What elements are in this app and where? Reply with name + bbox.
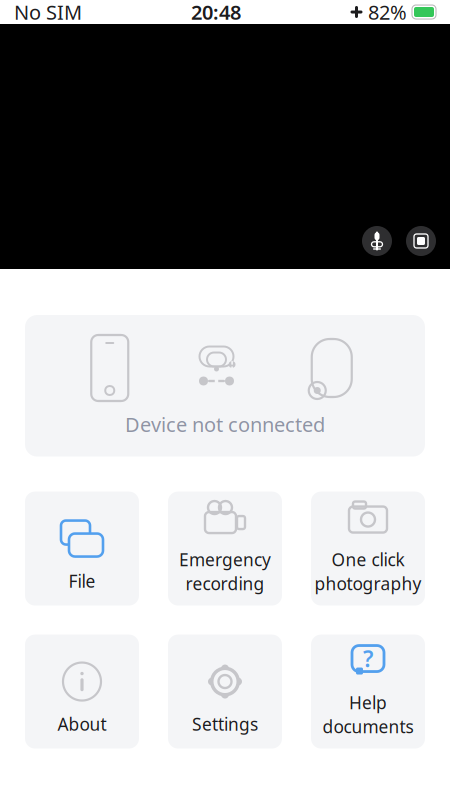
staticText: documents [322,715,413,738]
staticText: Help [349,691,387,714]
button[interactable]: Full screen [406,226,436,256]
button[interactable]: Settings [168,635,282,749]
button[interactable]: About [25,635,139,749]
button[interactable]: Emergency [168,492,282,606]
staticText: One click [331,548,404,571]
staticText: photography [314,572,421,595]
staticText: Device not connected [125,411,325,438]
staticText: 82% [368,0,407,25]
staticText: Emergency [179,548,271,571]
staticText: About [57,712,106,735]
staticText: No SIM [14,0,82,25]
button[interactable]: One click [311,492,425,606]
staticText: 20:48 [191,0,241,25]
staticText: Settings [192,712,258,735]
button[interactable]: ? [311,635,425,749]
staticText: recording [185,572,264,595]
staticText: File [68,569,95,592]
staticText: ? [363,643,373,674]
button[interactable]: File [25,492,139,606]
button[interactable]: Mute microphone [362,226,392,256]
